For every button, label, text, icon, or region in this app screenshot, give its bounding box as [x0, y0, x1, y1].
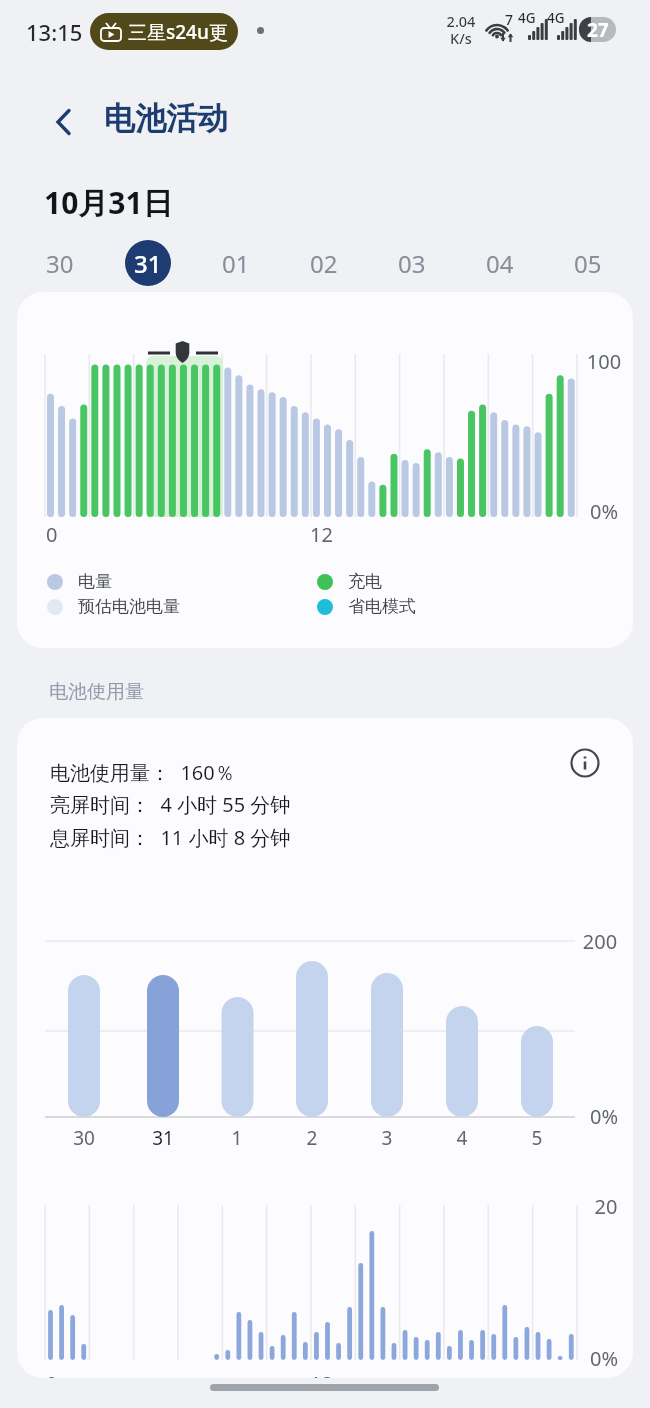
staticText: 电池使用量 [49, 680, 144, 704]
staticText: 100 [579, 348, 629, 375]
staticText: 0 [46, 521, 58, 548]
staticText: 三星s24u更 [128, 19, 228, 45]
staticText: 5 [512, 1125, 562, 1151]
staticText: 02 [310, 247, 338, 280]
staticText: 电池活动 [104, 99, 228, 138]
staticText: 05 [574, 247, 602, 280]
staticText: 12 [310, 1370, 333, 1378]
staticText: 4G [518, 9, 536, 27]
staticText: 1 [212, 1125, 262, 1151]
button[interactable]: 03 [389, 240, 435, 286]
staticText: 200 [575, 928, 625, 955]
staticText: 04 [486, 247, 514, 280]
staticText: 0 [46, 1370, 58, 1378]
button[interactable]: 01 [213, 240, 259, 286]
staticText: 10月31日 [44, 182, 173, 223]
staticText: 31 [138, 1125, 188, 1151]
staticText: 4 [437, 1125, 487, 1151]
staticText: 7 [505, 10, 514, 29]
staticText: 13:15 [26, 17, 83, 47]
button[interactable]: 30 [37, 240, 83, 286]
staticText: 省电模式 [348, 596, 416, 617]
staticText: 12 [310, 521, 333, 548]
button[interactable]: 三星s24u更 [100, 13, 228, 50]
staticText: 息屏时间： 11 小时 8 分钟 [50, 824, 291, 851]
staticText: 03 [398, 247, 426, 280]
button[interactable]: 31 [125, 240, 171, 286]
staticText: 充电 [348, 571, 382, 592]
button[interactable]: 05 [565, 240, 611, 286]
staticText: 3 [362, 1125, 412, 1151]
staticText: 亮屏时间： 4 小时 55 分钟 [50, 791, 291, 818]
staticText: 预估电池电量 [78, 596, 180, 617]
staticText: 0% [579, 1103, 629, 1130]
staticText: 0% [579, 498, 629, 525]
staticText: 30 [59, 1125, 109, 1151]
staticText: 31 [134, 247, 162, 280]
button[interactable]: 04 [477, 240, 523, 286]
button[interactable] [40, 98, 88, 146]
staticText: 电池使用量： 160％ [50, 759, 235, 786]
staticText: 0% [579, 1345, 629, 1372]
button[interactable]: 02 [301, 240, 347, 286]
staticText: 2.04 K/s [436, 11, 486, 48]
staticText: 27 [587, 17, 609, 42]
staticText: 2 [287, 1125, 337, 1151]
staticText: 20 [581, 1193, 631, 1220]
staticText: 30 [46, 247, 74, 280]
button[interactable] [568, 746, 602, 780]
staticText: 4G [547, 9, 565, 27]
staticText: 01 [222, 247, 250, 280]
staticText: 电量 [78, 571, 112, 592]
